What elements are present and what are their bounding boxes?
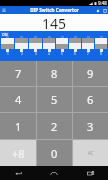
button[interactable]: 5 (56, 36, 68, 57)
button[interactable]: Home (36, 166, 72, 180)
button[interactable]: 145 (0, 14, 108, 31)
staticText: 6 (74, 52, 76, 56)
staticText: AC (88, 150, 94, 156)
staticText: 3 (35, 52, 37, 56)
staticText: 145 (42, 14, 67, 31)
staticText: 7 (87, 52, 89, 56)
button[interactable]: 4 (0, 87, 36, 112)
staticText: 4 (48, 52, 50, 56)
staticText: 9 (87, 66, 94, 81)
staticText: 0 (51, 146, 58, 161)
staticText: 8 (51, 66, 58, 81)
staticText: DIP Switch Convertor (30, 7, 79, 13)
staticText: 1 (15, 119, 22, 134)
button[interactable]: 7 (0, 61, 36, 86)
staticText: 8 (100, 52, 102, 56)
button[interactable]: 3 (29, 36, 42, 57)
staticText: 6 (87, 92, 94, 107)
staticText: 4 (15, 92, 22, 107)
button[interactable]: +8 (0, 140, 36, 166)
staticText: 1 (7, 52, 9, 56)
button[interactable]: 2 (15, 36, 28, 57)
button[interactable]: 6 (69, 36, 81, 57)
staticText: 5 (61, 52, 63, 56)
button[interactable]: 8 (95, 36, 107, 57)
staticText: 2 (51, 119, 58, 134)
button[interactable]: 2 (37, 113, 72, 139)
button[interactable]: 5 (37, 87, 72, 112)
staticText: +8 (12, 146, 25, 161)
button[interactable]: 7 (82, 36, 94, 57)
button[interactable]: 3 (73, 113, 108, 139)
button[interactable]: Back (0, 166, 36, 180)
button[interactable]: 6 (73, 87, 108, 112)
button[interactable]: Info (102, 8, 107, 13)
staticText: 2 (21, 52, 23, 56)
button[interactable]: 1 (1, 36, 14, 57)
button[interactable]: Settings (95, 8, 100, 13)
staticText: 9:48 (98, 0, 107, 6)
button[interactable]: 1 (0, 113, 36, 139)
staticText: 3 (87, 119, 94, 134)
button[interactable]: AC (73, 140, 108, 166)
button[interactable]: 0 (37, 140, 72, 166)
button[interactable]: 9 (73, 61, 108, 86)
staticText: ON (2, 32, 8, 37)
button[interactable]: Menu (1, 7, 7, 13)
staticText: 5 (51, 92, 58, 107)
button[interactable]: Recent apps (72, 166, 108, 180)
button[interactable]: 4 (43, 36, 55, 57)
button[interactable]: 8 (37, 61, 72, 86)
staticText: 7 (15, 66, 22, 81)
